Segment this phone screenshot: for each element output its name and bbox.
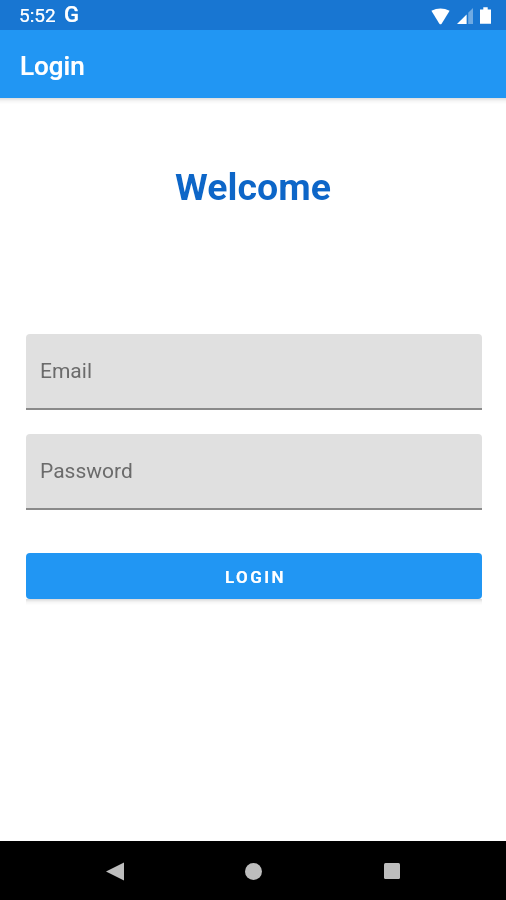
- staticText: Login: [20, 51, 85, 81]
- button[interactable]: Password: [26, 434, 482, 510]
- button[interactable]: Home: [229, 847, 277, 895]
- staticText: 5:52: [19, 4, 56, 26]
- button[interactable]: LOGIN: [26, 553, 482, 599]
- button[interactable]: Email: [26, 334, 482, 410]
- staticText: Email: [40, 359, 92, 384]
- staticText: Password: [40, 459, 133, 484]
- staticText: LOGIN: [225, 567, 286, 587]
- button[interactable]: Recent apps: [368, 847, 416, 895]
- button[interactable]: Back: [91, 847, 139, 895]
- staticText: G: [64, 2, 79, 28]
- staticText: Welcome: [0, 165, 506, 209]
